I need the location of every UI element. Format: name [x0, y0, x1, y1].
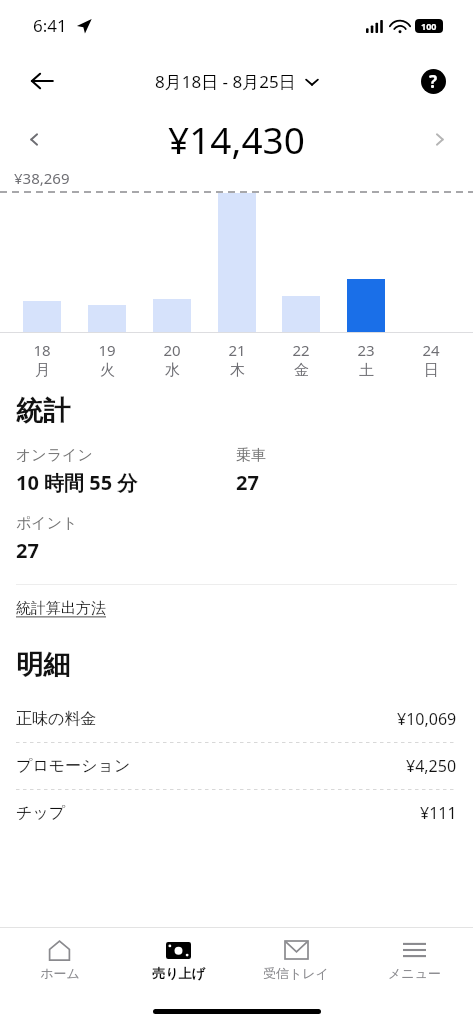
button[interactable]: チップ — [16, 790, 457, 836]
button[interactable]: Back — [20, 59, 64, 103]
staticText: チップ — [16, 803, 420, 823]
staticText: ホーム — [40, 965, 80, 981]
button[interactable]: 売り上げ — [119, 928, 237, 990]
staticText: 21 — [228, 340, 246, 360]
button[interactable]: 8月18日 - 8月25日 — [155, 70, 319, 93]
staticText: 27 — [236, 469, 259, 496]
staticText: 日 — [424, 361, 439, 380]
button[interactable] — [141, 191, 203, 333]
button[interactable] — [400, 191, 462, 333]
button[interactable]: Previous week — [14, 119, 54, 159]
staticText: 6:41 — [33, 14, 67, 37]
staticText: 24 — [422, 340, 440, 360]
button[interactable]: ホーム — [0, 928, 119, 990]
staticText: ¥14,430 — [168, 114, 305, 164]
staticText: 乗車 — [236, 446, 266, 465]
button[interactable] — [335, 191, 397, 333]
staticText: 正味の料金 — [16, 709, 397, 729]
staticText: オンライン — [16, 446, 93, 465]
button[interactable]: プロモーション — [16, 743, 457, 790]
staticText: ¥10,069 — [397, 708, 457, 730]
button[interactable]: 正味の料金 — [16, 696, 457, 743]
button[interactable]: Next week — [419, 119, 459, 159]
staticText: 金 — [294, 361, 309, 380]
staticText: 10 時間 55 分 — [16, 469, 138, 496]
staticText: ポイント — [16, 514, 78, 533]
staticText: 18 — [33, 340, 51, 360]
staticText: ? — [429, 70, 438, 93]
staticText: 土 — [359, 361, 374, 380]
button[interactable]: 統計算出方法 — [16, 599, 106, 618]
staticText: 火 — [100, 361, 115, 380]
staticText: 売り上げ — [152, 965, 205, 981]
staticText: メニュー — [388, 965, 441, 981]
button[interactable] — [11, 191, 73, 333]
staticText: 明細 — [16, 648, 70, 682]
staticText: 23 — [357, 340, 375, 360]
button[interactable]: メニュー — [355, 928, 473, 990]
staticText: 水 — [165, 361, 180, 380]
staticText: 統計算出方法 — [16, 599, 106, 618]
staticText: 月 — [35, 361, 50, 380]
button[interactable]: Help — [411, 59, 455, 103]
button[interactable] — [270, 191, 332, 333]
staticText: 22 — [292, 340, 310, 360]
staticText: 統計 — [16, 394, 70, 428]
staticText: 20 — [163, 340, 181, 360]
staticText: ¥111 — [420, 802, 457, 824]
button[interactable] — [206, 191, 268, 333]
staticText: 受信トレイ — [263, 965, 329, 981]
staticText: 19 — [98, 340, 116, 360]
staticText: 8月18日 - 8月25日 — [155, 70, 296, 93]
staticText: 木 — [230, 361, 245, 380]
staticText: ¥4,250 — [406, 755, 457, 777]
staticText: ¥38,269 — [14, 168, 70, 188]
staticText: プロモーション — [16, 756, 406, 776]
staticText: 27 — [16, 537, 39, 564]
button[interactable]: 受信トレイ — [237, 928, 355, 990]
staticText: 100 — [421, 20, 437, 32]
button[interactable] — [76, 191, 138, 333]
